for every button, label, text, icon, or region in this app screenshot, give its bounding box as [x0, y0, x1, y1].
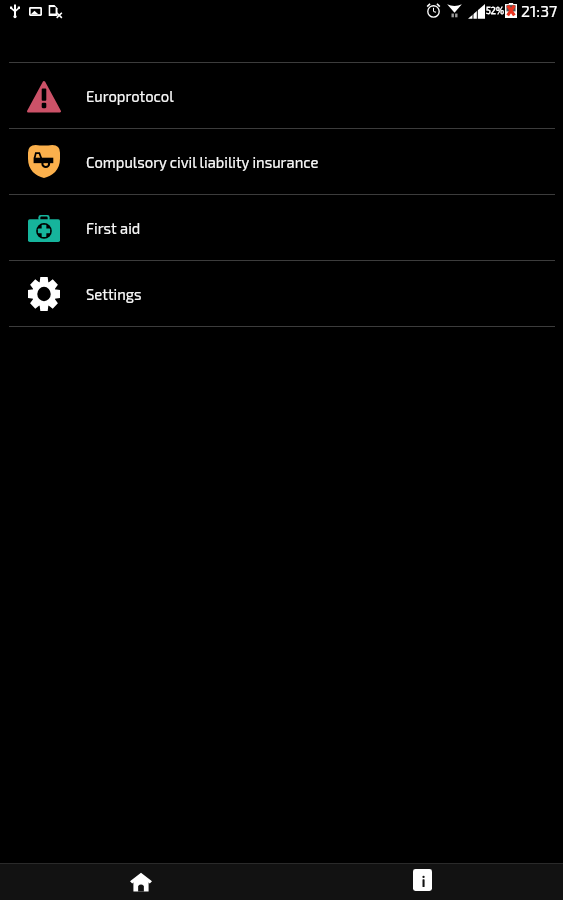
staticText: Settings [86, 285, 142, 303]
staticText: 52% [486, 5, 504, 16]
button[interactable]: Info [281, 863, 563, 900]
staticText: First aid [86, 219, 141, 237]
button[interactable]: Home [0, 863, 281, 900]
button[interactable]: Compulsory civil liability insurance [0, 129, 563, 194]
staticText: Compulsory civil liability insurance [86, 153, 319, 171]
staticText: 21:37 [521, 1, 558, 20]
button[interactable]: Settings [0, 261, 563, 326]
button[interactable]: Europrotocol [0, 63, 563, 128]
button[interactable]: First aid [0, 195, 563, 260]
staticText: Europrotocol [86, 87, 174, 105]
